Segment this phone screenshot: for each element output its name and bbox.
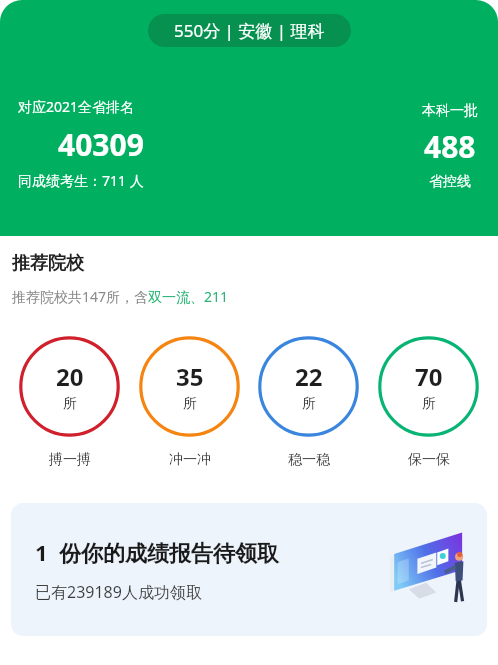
staticText: 1 份你的成绩报告待领取 [35, 537, 280, 567]
button[interactable]: 70 [378, 336, 479, 469]
staticText: 所 [302, 395, 316, 413]
button[interactable]: 20 [19, 336, 120, 469]
staticText: 稳一稳 [288, 451, 330, 469]
staticText: 推荐院校 [12, 252, 84, 275]
staticText: 488 [424, 126, 476, 167]
button[interactable]: 1 份你的成绩报告待领取 [11, 503, 487, 636]
staticText: 20 [56, 360, 84, 393]
staticText: 40309 [58, 124, 144, 165]
staticText: 35 [176, 360, 204, 393]
button[interactable]: 35 [139, 336, 240, 469]
staticText: 已有239189人成功领取 [35, 581, 202, 603]
staticText: 同成绩考生：711 人 [18, 171, 144, 190]
staticText: 70 [415, 360, 443, 393]
staticText: 保一保 [408, 451, 450, 469]
button[interactable]: 22 [258, 336, 359, 469]
staticText: 22 [295, 360, 323, 393]
staticText: 搏一搏 [49, 451, 91, 469]
button[interactable]: 550分 | 安徽 | 理科 [148, 14, 351, 47]
staticText: 所 [183, 395, 197, 413]
staticText: 所 [422, 395, 436, 413]
staticText: 对应2021全省排名 [18, 97, 135, 116]
staticText: 所 [63, 395, 77, 413]
staticText: 推荐院校共147所，含双一流、211 [12, 287, 229, 306]
other: 成绩报告插图 [383, 530, 469, 610]
staticText: 本科一批 [422, 102, 478, 120]
staticText: 550分 | 安徽 | 理科 [174, 19, 325, 42]
staticText: 冲一冲 [169, 451, 211, 469]
staticText: 省控线 [429, 173, 471, 191]
